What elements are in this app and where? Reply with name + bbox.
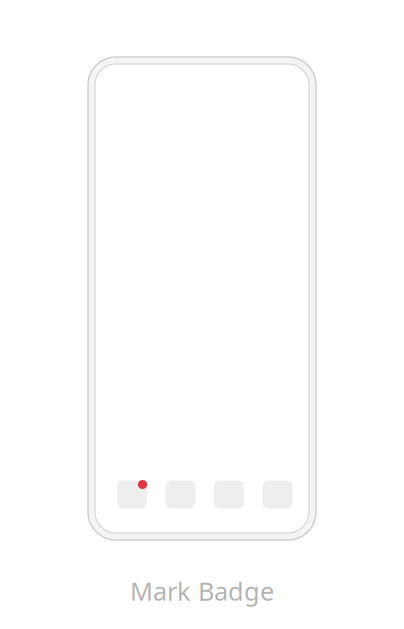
button[interactable]: Tab item xyxy=(165,480,195,508)
button[interactable]: Tab item, 1 new item xyxy=(117,480,147,508)
staticText: Mark Badge xyxy=(130,574,274,608)
button[interactable]: Tab item xyxy=(262,480,292,508)
button[interactable]: Tab item xyxy=(214,480,244,508)
